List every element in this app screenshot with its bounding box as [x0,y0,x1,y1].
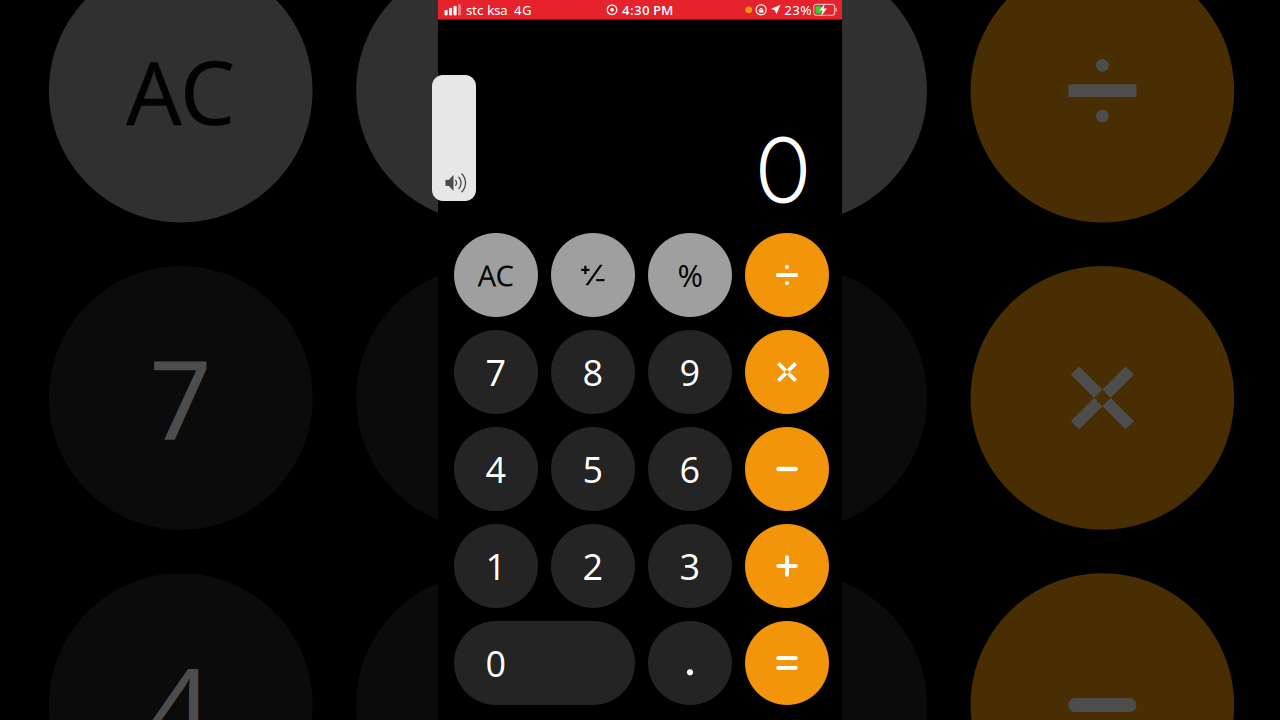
button[interactable]: 2 [551,524,635,608]
staticText: 5 [582,445,603,493]
button[interactable]: Plus minus [551,233,635,317]
button[interactable]: 7 [454,330,538,414]
staticText: AC [477,255,514,294]
staticText: 3 [679,542,700,590]
button[interactable]: 6 [648,427,732,511]
staticText: 1 [485,542,506,590]
staticText: 9 [679,348,700,396]
button[interactable]: 3 [648,524,732,608]
button[interactable]: % [648,233,732,317]
staticText: 23% [784,1,811,19]
button[interactable]: 8 [551,330,635,414]
staticText: stc ksa [466,1,508,19]
staticText: 6 [679,445,700,493]
button[interactable]: 5 [551,427,635,511]
button[interactable]: 9 [648,330,732,414]
staticText: 0 [756,116,809,224]
button[interactable]: Equals [745,621,829,705]
button[interactable]: 4 [454,427,538,511]
button[interactable]: 0 [454,621,635,705]
staticText: 0 [485,639,506,687]
staticText: AC [126,32,236,149]
staticText: 7 [149,325,212,470]
staticText: 4 [485,445,506,493]
button[interactable]: Multiply [745,330,829,414]
button[interactable]: 1 [454,524,538,608]
button[interactable]: Plus [745,524,829,608]
button[interactable]: Decimal point [648,621,732,705]
staticText: % [677,255,702,295]
button[interactable]: Minus [745,427,829,511]
staticText: 7 [485,348,506,396]
staticText: 4:30 PM [622,1,673,19]
staticText: 4 [149,632,212,720]
button[interactable]: AC [454,233,538,317]
button[interactable]: Divide [745,233,829,317]
staticText: 8 [582,348,603,396]
staticText: 2 [582,542,603,590]
staticText: 4G [514,1,532,19]
